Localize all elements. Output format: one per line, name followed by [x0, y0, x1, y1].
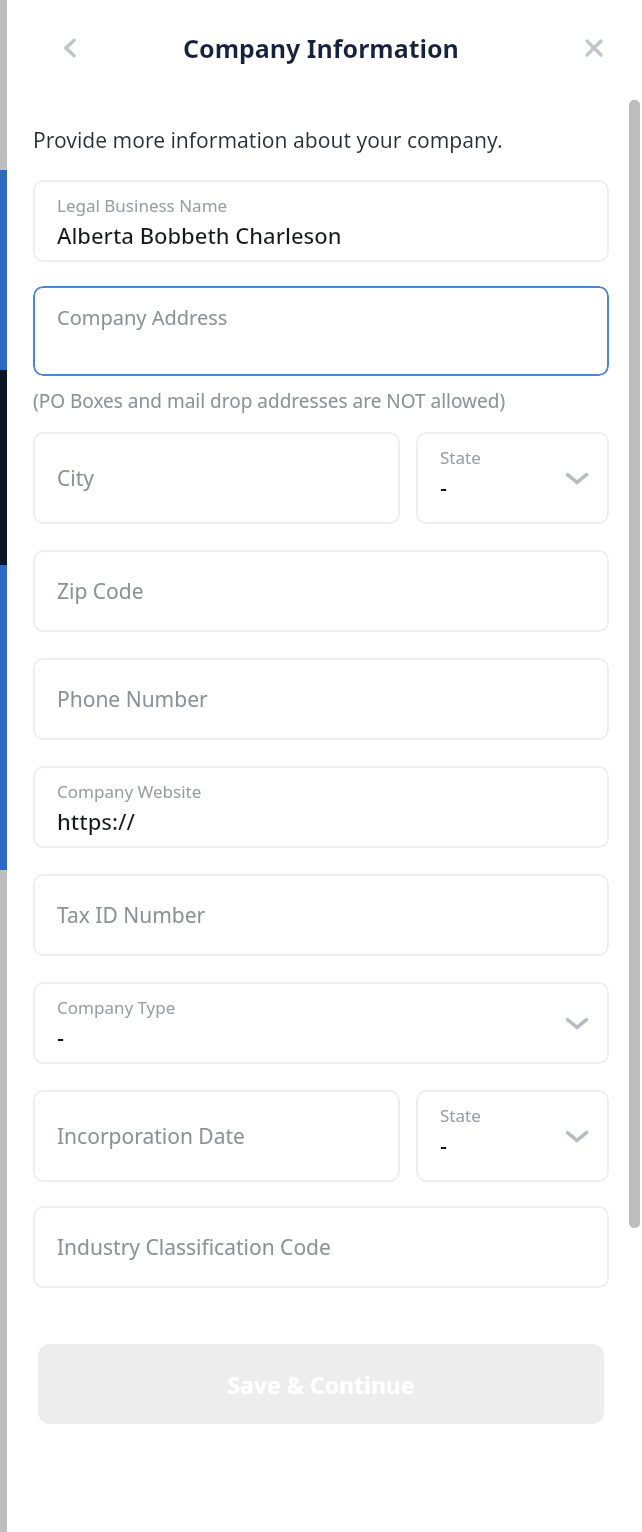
button[interactable]: Industry Classification Code	[33, 1206, 609, 1288]
button[interactable]: Company Address	[33, 286, 609, 376]
staticText: -	[57, 1022, 65, 1052]
staticText: -	[440, 472, 448, 502]
staticText: Zip Code	[57, 577, 144, 606]
staticText: (PO Boxes and mail drop addresses are NO…	[33, 388, 506, 414]
staticText: State	[440, 1104, 481, 1127]
button[interactable]: State	[416, 1090, 609, 1182]
staticText: Company Address	[57, 304, 228, 331]
staticText: Company Website	[57, 780, 202, 803]
staticText: -	[440, 1130, 448, 1160]
button[interactable]: City	[33, 432, 400, 524]
button[interactable]: Zip Code	[33, 550, 609, 632]
staticText: Phone Number	[57, 685, 208, 714]
staticText: City	[57, 464, 94, 493]
staticText: Incorporation Date	[57, 1122, 245, 1151]
staticText: Alberta Bobbeth Charleson	[57, 220, 342, 250]
staticText: Legal Business Name	[57, 194, 228, 217]
staticText: Company Type	[57, 996, 176, 1019]
staticText: https://	[57, 806, 135, 836]
button[interactable]: Save & Continue	[38, 1344, 604, 1424]
button[interactable]: Phone Number	[33, 658, 609, 740]
staticText: Industry Classification Code	[57, 1233, 331, 1262]
button[interactable]: Company Website	[33, 766, 609, 848]
button[interactable]: Tax ID Number	[33, 874, 609, 956]
staticText: Company Information	[183, 31, 459, 65]
staticText: Save & Continue	[227, 1369, 415, 1400]
button[interactable]: State	[416, 432, 609, 524]
button[interactable]: Legal Business Name	[33, 180, 609, 262]
staticText: Tax ID Number	[57, 901, 206, 930]
button[interactable]: Close	[568, 22, 620, 74]
button[interactable]: Incorporation Date	[33, 1090, 400, 1182]
button[interactable]: Company Type	[33, 982, 609, 1064]
staticText: State	[440, 446, 481, 469]
staticText: Provide more information about your comp…	[33, 126, 503, 155]
button[interactable]: Back	[44, 22, 96, 74]
